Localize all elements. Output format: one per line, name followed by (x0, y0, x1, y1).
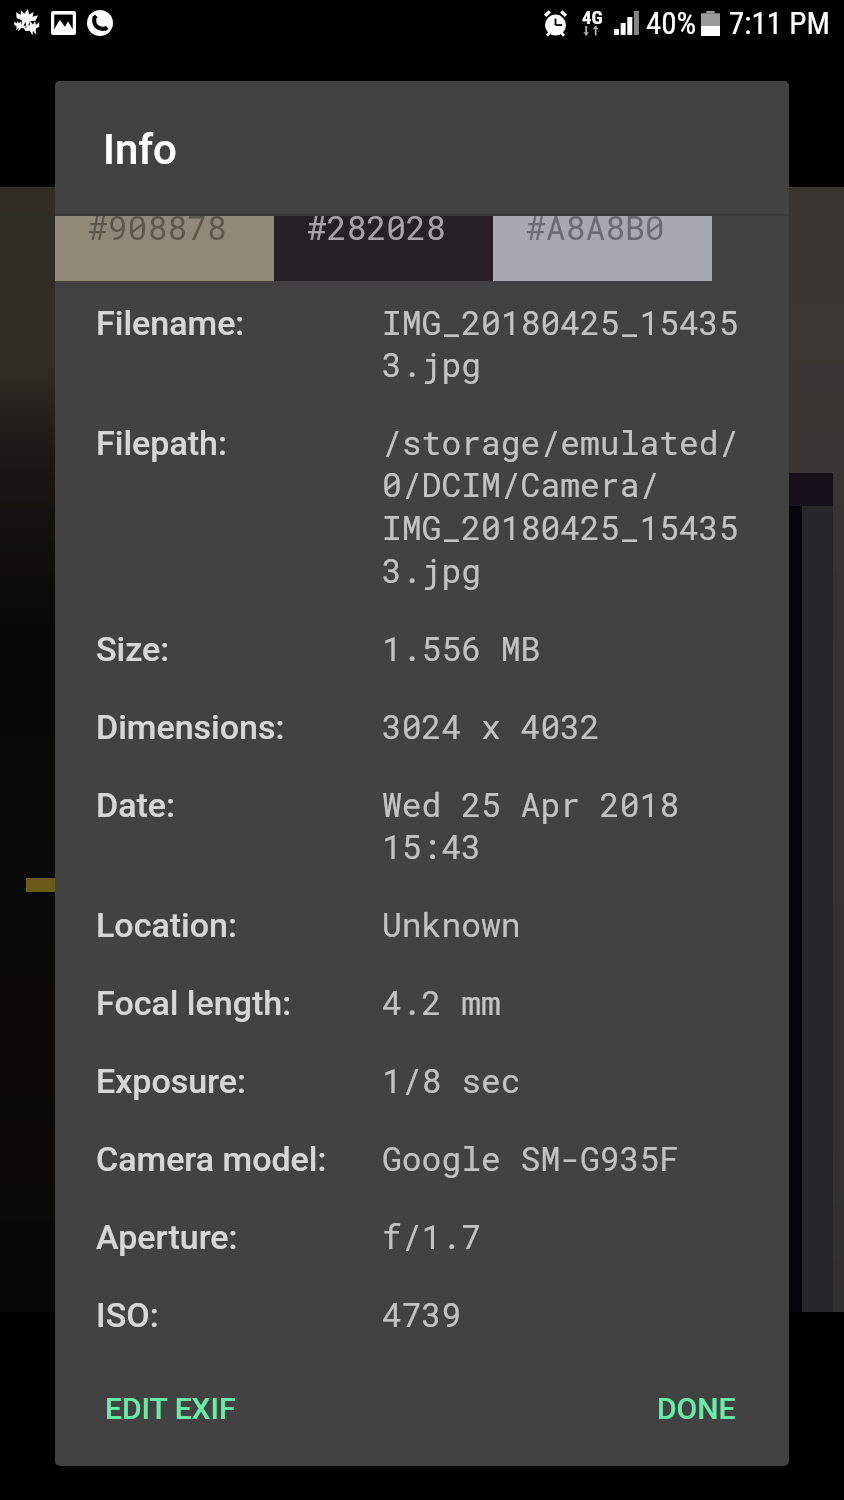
button[interactable]: Date: (55, 785, 789, 905)
staticText: Location: (96, 905, 237, 945)
staticText: Filename: (96, 303, 245, 343)
button[interactable]: Location: (55, 905, 789, 983)
staticText: Camera model: (96, 1139, 327, 1179)
staticText: Unknown (382, 902, 521, 946)
button[interactable]: Aperture: (55, 1217, 789, 1295)
staticText: #908878 (88, 205, 227, 249)
staticText: 4.2 mm (382, 980, 501, 1024)
staticText: 7:11 PM (729, 5, 830, 41)
staticText: Exposure: (96, 1061, 246, 1101)
staticText: 3024 x 4032 (382, 704, 600, 748)
button[interactable]: #282028 (274, 216, 493, 281)
staticText: Date: (96, 785, 176, 825)
staticText: Wed 25 Apr 2018 15:43 (382, 782, 680, 868)
staticText: ISO: (96, 1295, 159, 1335)
button[interactable]: Filename: (55, 303, 789, 423)
staticText: Focal length: (96, 983, 292, 1023)
staticText: 40% (646, 5, 697, 41)
button[interactable]: DONE (641, 1377, 752, 1440)
staticText: Dimensions: (96, 707, 285, 747)
staticText: EDIT EXIF (105, 1391, 236, 1426)
button[interactable]: #A8A8B0 (493, 216, 712, 281)
staticText: #A8A8B0 (526, 205, 665, 249)
staticText: 4739 (382, 1292, 462, 1336)
button[interactable]: Dimensions: (55, 707, 789, 785)
button[interactable]: Size: (55, 629, 789, 707)
staticText: Aperture: (96, 1217, 238, 1257)
staticText: Filepath: (96, 423, 227, 463)
staticText: /storage/emulated/ 0/DCIM/Camera/ IMG_20… (382, 420, 739, 592)
staticText: Size: (96, 629, 170, 669)
button[interactable]: Filepath: (55, 423, 789, 629)
staticText: DONE (657, 1391, 736, 1426)
staticText: f/1.7 (382, 1214, 482, 1258)
button[interactable]: Focal length: (55, 983, 789, 1061)
button[interactable]: ISO: (55, 1295, 789, 1373)
staticText: 1/8 sec (382, 1058, 521, 1102)
staticText: Info (103, 125, 177, 174)
button[interactable]: Camera model: (55, 1139, 789, 1217)
staticText: 4G (582, 6, 603, 28)
button[interactable]: EDIT EXIF (89, 1377, 252, 1440)
staticText: 1.556 MB (382, 626, 541, 670)
staticText: #282028 (307, 205, 446, 249)
button[interactable]: Exposure: (55, 1061, 789, 1139)
staticText: Google SM-G935F (382, 1136, 680, 1180)
button[interactable]: #908878 (55, 216, 274, 281)
staticText: IMG_20180425_15435 3.jpg (382, 300, 739, 386)
